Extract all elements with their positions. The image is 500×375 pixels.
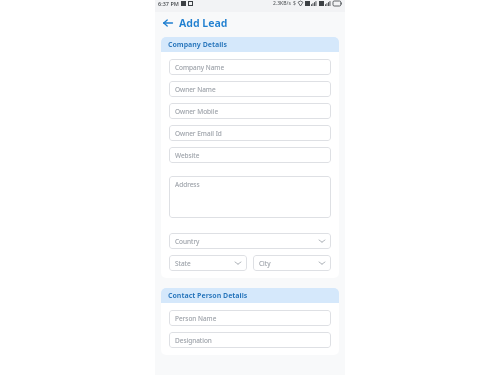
staticText: State <box>175 259 191 268</box>
staticText: Address <box>175 180 200 189</box>
staticText: Owner Name <box>175 85 216 94</box>
button[interactable]: Person Name <box>169 310 331 326</box>
button[interactable]: Address <box>169 176 331 218</box>
staticText: Website <box>175 151 200 160</box>
staticText: 6:37 PM <box>158 0 179 7</box>
staticText: Person Name <box>175 314 217 323</box>
button[interactable]: Owner Email Id <box>169 125 331 141</box>
button[interactable]: State <box>169 255 247 271</box>
button[interactable]: Owner Name <box>169 81 331 97</box>
staticText: Country <box>175 237 200 246</box>
staticText: Company Details <box>168 40 227 50</box>
button[interactable]: Designation <box>169 332 331 348</box>
staticText: Add Lead <box>179 16 228 30</box>
staticText: Contact Person Details <box>168 291 248 301</box>
button[interactable]: Back <box>160 15 176 31</box>
staticText: City <box>259 259 271 268</box>
button[interactable]: Country <box>169 233 331 249</box>
staticText: Owner Email Id <box>175 129 222 138</box>
staticText: Designation <box>175 336 212 345</box>
staticText: Owner Mobile <box>175 107 219 116</box>
button[interactable]: Company Name <box>169 59 331 75</box>
button[interactable]: Owner Mobile <box>169 103 331 119</box>
staticText: $ <box>293 0 296 7</box>
button[interactable]: City <box>253 255 331 271</box>
staticText: Company Name <box>175 63 225 72</box>
staticText: 2.3KB/s <box>273 0 291 7</box>
button[interactable]: Website <box>169 147 331 163</box>
